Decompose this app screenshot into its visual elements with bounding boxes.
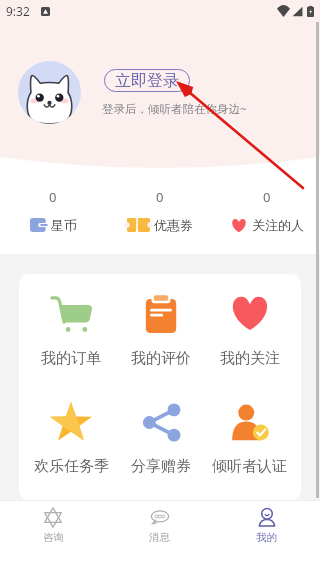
staticText: 消息: [149, 531, 170, 544]
staticText: 0: [156, 188, 164, 206]
staticText: 关注的人: [252, 217, 304, 233]
button[interactable]: 我的: [213, 501, 320, 544]
button[interactable]: 我的关注: [205, 295, 294, 368]
button[interactable]: 我的订单: [26, 295, 116, 368]
staticText: 我的评价: [131, 349, 191, 368]
staticText: 我的关注: [220, 349, 280, 368]
staticText: 登录后，倾听者陪在你身边~: [102, 101, 247, 117]
staticText: 咨询: [43, 531, 64, 544]
button[interactable]: 我的评价: [116, 295, 205, 368]
button[interactable]: 咨询: [0, 501, 106, 544]
button[interactable]: 0: [0, 188, 106, 233]
button[interactable]: 0: [213, 188, 320, 233]
staticText: 立即登录: [115, 71, 179, 91]
staticText: 星币: [51, 217, 77, 233]
staticText: 0: [263, 188, 271, 206]
staticText: 倾听者认证: [212, 457, 287, 476]
button[interactable]: Avatar: [18, 61, 81, 124]
staticText: 优惠券: [154, 217, 193, 233]
button[interactable]: 倾听者认证: [205, 403, 294, 476]
button[interactable]: 分享赠券: [116, 403, 205, 476]
button[interactable]: 0: [106, 188, 213, 233]
staticText: 我的订单: [41, 349, 101, 368]
staticText: 9:32: [6, 3, 30, 19]
staticText: 0: [49, 188, 57, 206]
button[interactable]: 欢乐任务季: [26, 403, 116, 476]
staticText: 我的: [256, 531, 277, 544]
staticText: 欢乐任务季: [34, 457, 109, 476]
button[interactable]: 立即登录: [104, 69, 190, 92]
button[interactable]: 消息: [106, 501, 213, 544]
staticText: 分享赠券: [131, 457, 191, 476]
